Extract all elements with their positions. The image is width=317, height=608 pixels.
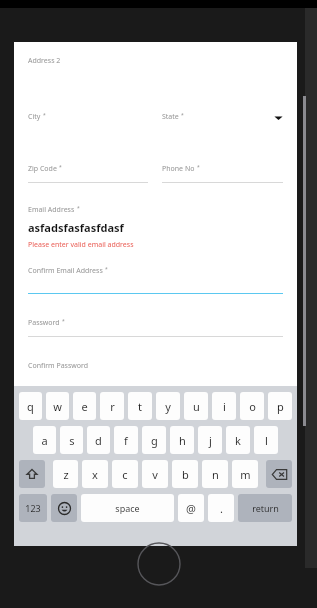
staticText: g [151, 433, 158, 448]
staticText: c [122, 467, 128, 482]
staticText: h [179, 433, 186, 448]
staticText: * [62, 318, 65, 325]
staticText: u [193, 399, 200, 414]
staticText: o [249, 399, 256, 414]
button[interactable]: j [198, 426, 222, 454]
button[interactable]: s [60, 426, 83, 454]
button[interactable]: Email Address [28, 205, 283, 250]
button[interactable]: Address 2 [28, 56, 283, 66]
button[interactable]: c [112, 460, 138, 488]
staticText: x [92, 467, 98, 482]
staticText: Password [28, 318, 60, 328]
staticText: Confirm Email Address [28, 266, 103, 276]
button[interactable]: Home [137, 542, 181, 586]
button[interactable]: i [212, 392, 236, 420]
staticText: * [197, 164, 200, 171]
staticText: s [69, 433, 75, 448]
staticText: q [27, 399, 34, 414]
staticText: * [181, 112, 184, 119]
button[interactable]: u [184, 392, 208, 420]
button[interactable]: v [142, 460, 168, 488]
staticText: a [41, 433, 48, 448]
staticText: Phone No [162, 164, 195, 174]
staticText: f [124, 433, 128, 448]
staticText: space [115, 502, 140, 514]
button[interactable]: o [240, 392, 264, 420]
button[interactable]: e [73, 392, 96, 420]
staticText: @ [186, 501, 196, 516]
button[interactable]: f [114, 426, 138, 454]
button[interactable]: @ [178, 494, 204, 522]
staticText: e [81, 399, 88, 414]
button[interactable]: Confirm Password [28, 361, 283, 369]
button[interactable]: y [156, 392, 180, 420]
staticText: asfadsfasfasfdasf [28, 220, 124, 235]
button[interactable]: t [128, 392, 152, 420]
staticText: * [105, 266, 108, 273]
button[interactable]: Backspace [266, 460, 292, 488]
button[interactable]: d [87, 426, 110, 454]
button[interactable]: n [202, 460, 228, 488]
staticText: m [240, 467, 251, 482]
button[interactable]: p [268, 392, 292, 420]
staticText: Zip Code [28, 164, 57, 174]
button[interactable]: b [172, 460, 198, 488]
button[interactable]: Emoji [51, 494, 77, 522]
button[interactable]: Shift [19, 460, 45, 488]
button[interactable]: 123 [19, 494, 47, 522]
staticText: Address 2 [28, 56, 61, 66]
staticText: y [165, 399, 171, 414]
staticText: i [223, 399, 226, 414]
button[interactable]: a [33, 426, 56, 454]
staticText: l [265, 433, 268, 448]
button[interactable]: space [81, 494, 174, 522]
staticText: City [28, 112, 41, 122]
button[interactable]: r [100, 392, 124, 420]
button[interactable]: Confirm Email Address [28, 266, 283, 294]
staticText: Email Address [28, 205, 75, 215]
button[interactable]: l [254, 426, 278, 454]
staticText: n [212, 467, 219, 482]
staticText: * [77, 205, 80, 212]
button[interactable]: Phone No [162, 164, 283, 183]
other: Select state [274, 113, 283, 122]
staticText: v [152, 467, 158, 482]
staticText: t [138, 399, 142, 414]
button[interactable]: City [28, 112, 148, 122]
staticText: State [162, 112, 179, 122]
staticText: Please enter valid email address [28, 240, 134, 250]
staticText: d [95, 433, 102, 448]
staticText: k [235, 433, 241, 448]
button[interactable]: State [162, 112, 283, 122]
button[interactable]: w [46, 392, 69, 420]
staticText: * [59, 164, 62, 171]
staticText: Confirm Password [28, 361, 89, 369]
button[interactable]: . [208, 494, 234, 522]
button[interactable]: return [238, 494, 292, 522]
staticText: . [220, 501, 223, 516]
staticText: w [53, 399, 62, 414]
staticText: b [182, 467, 189, 482]
button[interactable]: x [82, 460, 108, 488]
staticText: j [209, 433, 212, 448]
staticText: p [277, 399, 284, 414]
button[interactable]: z [53, 460, 78, 488]
button[interactable]: m [232, 460, 258, 488]
button[interactable]: h [170, 426, 194, 454]
button[interactable]: Zip Code [28, 164, 148, 183]
button[interactable]: k [226, 426, 250, 454]
button[interactable]: g [142, 426, 166, 454]
button[interactable]: q [19, 392, 42, 420]
staticText: return [252, 502, 279, 514]
staticText: r [110, 399, 115, 414]
staticText: * [43, 112, 46, 119]
staticText: z [63, 467, 69, 482]
staticText: 123 [25, 502, 41, 514]
button[interactable]: Password [28, 318, 283, 337]
